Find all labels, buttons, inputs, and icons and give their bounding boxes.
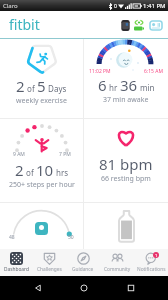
staticText: 81 bpm bbox=[99, 154, 153, 174]
staticText: of bbox=[24, 167, 36, 178]
staticText: 11:02 PM bbox=[89, 68, 111, 75]
staticText: 48 bbox=[9, 234, 15, 241]
staticText: 10 bbox=[36, 160, 54, 180]
button[interactable]: 81 bpm bbox=[84, 119, 168, 202]
button[interactable]: Community bbox=[100, 249, 134, 276]
staticText: 7 PM bbox=[59, 151, 71, 158]
staticText: 5 bbox=[37, 76, 46, 96]
button[interactable] bbox=[84, 203, 168, 249]
staticText: hr bbox=[107, 82, 120, 93]
staticText: 37 min awake bbox=[103, 95, 149, 105]
staticText: of bbox=[25, 83, 37, 94]
staticText: 36 bbox=[120, 75, 138, 95]
staticText: 50 bbox=[68, 234, 74, 241]
button[interactable]: Home bbox=[75, 279, 93, 297]
staticText: 66 resting bpm bbox=[101, 174, 151, 184]
staticText: 6:15 AM bbox=[144, 68, 163, 75]
staticText: Guidance bbox=[72, 266, 94, 273]
staticText: hrs bbox=[54, 167, 69, 178]
staticText: weekly exercise bbox=[16, 96, 67, 106]
staticText: Claro bbox=[3, 2, 18, 10]
staticText: Community bbox=[104, 266, 131, 273]
button[interactable]: Dashboard bbox=[0, 249, 33, 276]
button[interactable]: Device bbox=[118, 18, 132, 32]
staticText: Days bbox=[46, 83, 67, 94]
button[interactable]: Back bbox=[29, 279, 47, 297]
button[interactable]: 9 AM bbox=[0, 119, 83, 202]
staticText: Dashboard bbox=[4, 266, 29, 273]
button[interactable]: 2 bbox=[0, 39, 83, 118]
button[interactable]: 1 bbox=[134, 249, 168, 276]
staticText: 0 bbox=[114, 3, 117, 10]
staticText: min bbox=[138, 82, 155, 93]
button[interactable]: Recent apps bbox=[122, 279, 140, 297]
button[interactable]: Challenges bbox=[33, 249, 66, 276]
staticText: 2 bbox=[15, 160, 24, 180]
staticText: 2 bbox=[16, 76, 25, 96]
button[interactable]: Payment card bbox=[148, 17, 164, 33]
button[interactable]: 48 bbox=[0, 203, 83, 249]
staticText: 1 bbox=[155, 253, 158, 258]
staticText: Challenges bbox=[37, 266, 62, 273]
staticText: 1:41 PM bbox=[143, 2, 166, 10]
staticText: 9 AM bbox=[13, 151, 25, 158]
staticText: fitbit bbox=[9, 15, 40, 34]
staticText: 250+ steps per hour bbox=[9, 180, 75, 190]
button[interactable]: 11:02 PM bbox=[84, 39, 168, 118]
staticText: 6 bbox=[98, 75, 107, 95]
button[interactable]: Guidance bbox=[66, 249, 100, 276]
staticText: Notifications bbox=[137, 266, 166, 273]
